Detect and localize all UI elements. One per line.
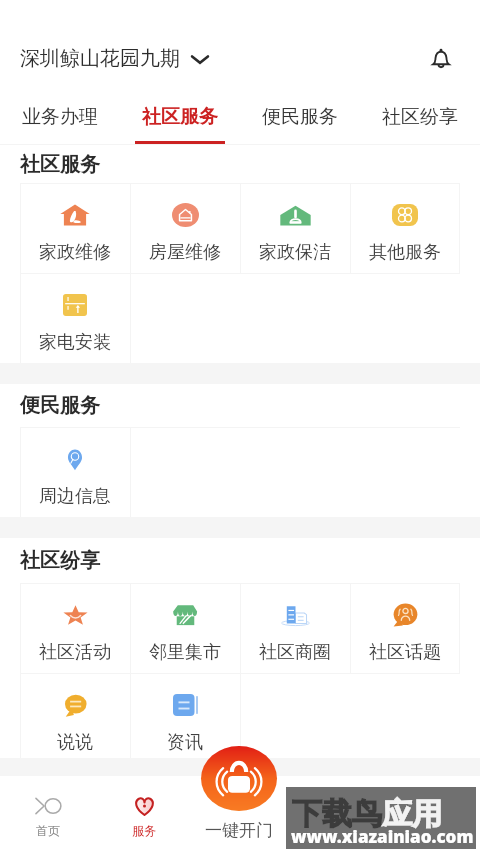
button[interactable]: 社区活动 [20, 583, 130, 673]
button[interactable]: 一键开门 [201, 746, 277, 811]
staticText: 社区活动 [39, 641, 111, 664]
staticText: 社区纷享 [20, 548, 100, 573]
staticText: 家政维修 [39, 241, 111, 264]
staticText: 下载鸟 [292, 795, 382, 833]
button[interactable]: 深圳鲸山花园九期 [20, 46, 209, 71]
staticText: 服务 [132, 823, 156, 838]
staticText: 便民服务 [262, 105, 338, 129]
button[interactable]: 社区话题 [350, 583, 460, 673]
button[interactable]: 业务办理 [0, 91, 120, 145]
staticText: 社区服务 [20, 152, 100, 177]
staticText: 社区服务 [142, 105, 218, 129]
button[interactable]: 社区服务 [120, 91, 240, 145]
staticText: 其他服务 [369, 241, 441, 264]
staticText: 应用 [382, 795, 442, 833]
staticText: 家电安装 [39, 331, 111, 354]
button[interactable]: 社区商圈 [240, 583, 350, 673]
button[interactable]: 邻里集市 [130, 583, 240, 673]
button[interactable]: 房屋维修 [130, 183, 240, 273]
button[interactable]: 通知 [428, 46, 454, 72]
staticText: www.xiazainiao.com [291, 825, 474, 848]
staticText: 一键开门 [205, 820, 273, 841]
staticText: 业务办理 [22, 105, 98, 129]
button[interactable]: 说说 [20, 673, 130, 758]
staticText: 邻里集市 [149, 641, 221, 664]
staticText: 深圳鲸山花园九期 [20, 46, 180, 71]
button[interactable]: 其他服务 [350, 183, 460, 273]
staticText: 资讯 [167, 731, 203, 754]
staticText: 家政保洁 [259, 241, 331, 264]
staticText: 社区商圈 [259, 641, 331, 664]
staticText: 说说 [57, 731, 93, 754]
staticText: 社区纷享 [382, 105, 458, 129]
button[interactable]: 便民服务 [240, 91, 360, 145]
staticText: 周边信息 [39, 485, 111, 508]
staticText: 房屋维修 [149, 241, 221, 264]
button[interactable]: 社区纷享 [360, 91, 480, 145]
button[interactable]: 周边信息 [20, 427, 130, 517]
button[interactable]: 家政维修 [20, 183, 130, 273]
staticText: 首页 [36, 823, 60, 838]
button[interactable]: 家政保洁 [240, 183, 350, 273]
button[interactable]: 资讯 [130, 673, 240, 758]
staticText: 便民服务 [20, 393, 100, 418]
button[interactable]: 家电安装 [20, 273, 130, 363]
button[interactable]: 服务 [96, 776, 192, 853]
button[interactable]: 首页 [0, 776, 96, 853]
staticText: 社区话题 [369, 641, 441, 664]
